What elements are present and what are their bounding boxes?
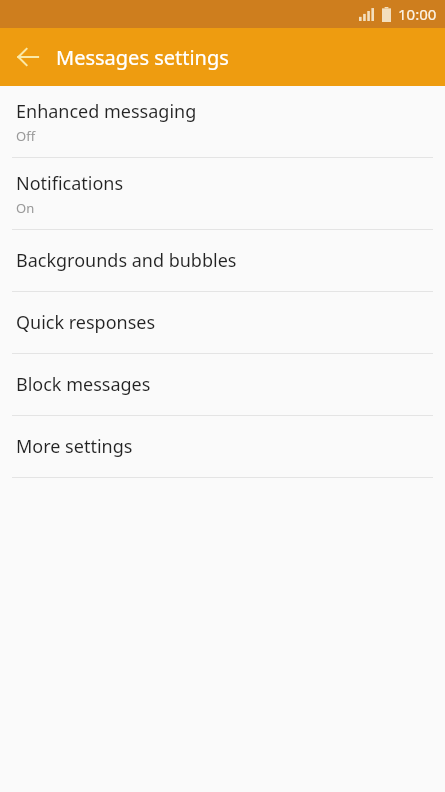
button[interactable]: Quick responses bbox=[0, 292, 445, 353]
staticText: Notifications bbox=[16, 171, 124, 196]
staticText: Enhanced messaging bbox=[16, 99, 197, 124]
button[interactable]: Backgrounds and bubbles bbox=[0, 230, 445, 291]
staticText: Backgrounds and bubbles bbox=[16, 248, 237, 273]
staticText: Messages settings bbox=[56, 44, 229, 71]
staticText: More settings bbox=[16, 434, 133, 459]
staticText: Off bbox=[16, 127, 36, 145]
staticText: Quick responses bbox=[16, 310, 156, 335]
button[interactable]: Notifications bbox=[0, 158, 445, 229]
button[interactable]: Block messages bbox=[0, 354, 445, 415]
button[interactable]: Enhanced messaging bbox=[0, 86, 445, 157]
button[interactable]: Navigate up bbox=[8, 37, 48, 77]
staticText: 10:00 bbox=[398, 4, 437, 24]
staticText: Block messages bbox=[16, 372, 151, 397]
staticText: On bbox=[16, 199, 35, 217]
button[interactable]: More settings bbox=[0, 416, 445, 477]
